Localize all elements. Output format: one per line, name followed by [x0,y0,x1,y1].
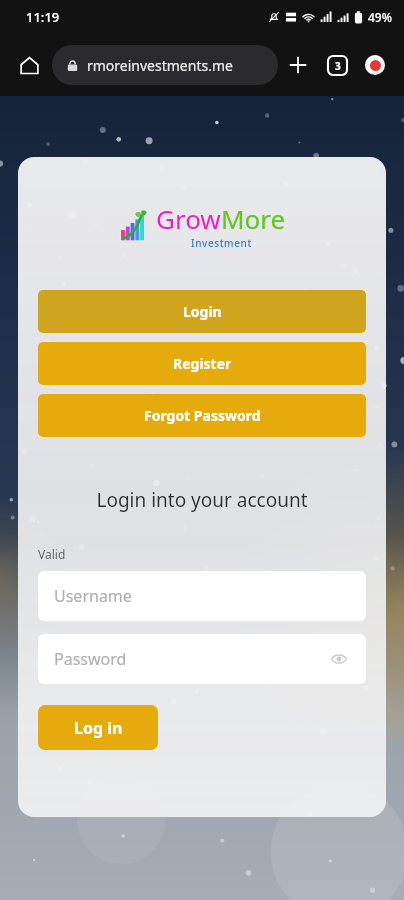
staticText: Investment [191,236,252,250]
staticText: More [221,201,286,236]
button[interactable]: rmoreinvestments.me [52,45,278,85]
staticText: Log in [74,717,123,739]
button[interactable]: Profile [356,46,394,84]
button[interactable]: Tabs [318,46,356,84]
staticText: Register [173,354,232,373]
staticText: Grow [156,201,221,236]
staticText: 49% [368,9,392,25]
button[interactable]: Forgot Password [38,394,366,437]
staticText: rmoreinvestments.me [87,56,233,75]
button[interactable]: Register [38,342,366,385]
button[interactable]: Home [10,46,48,84]
button[interactable]: Login [38,290,366,333]
staticText: Login into your account [38,487,366,513]
staticText: 3 [335,59,341,73]
staticText: Login [183,302,222,321]
staticText: Password [54,648,127,670]
button[interactable]: Show password [328,648,350,670]
staticText: Valid [38,546,66,562]
button[interactable]: Username [38,571,366,621]
staticText: Username [54,585,132,607]
staticText: 11:19 [26,8,60,26]
button[interactable]: Password [38,634,366,684]
staticText: Forgot Password [144,406,261,425]
button[interactable]: Log in [38,705,158,750]
button[interactable]: New tab [278,45,318,85]
